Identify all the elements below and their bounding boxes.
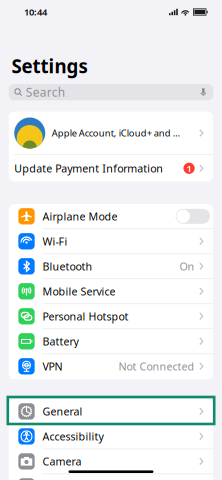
staticText: Battery — [42, 334, 78, 348]
button[interactable]: Mobile Service — [9, 279, 213, 304]
staticText: VPN — [42, 359, 62, 373]
button[interactable]: Personal Hotspot — [9, 304, 213, 329]
button[interactable]: Accessibility — [9, 424, 213, 449]
button[interactable]: Wi-Fi — [9, 229, 213, 254]
staticText: Apple Account, iCloud+ and more — [52, 127, 184, 139]
staticText: Mobile Service — [42, 284, 115, 298]
button[interactable]: VPN — [9, 354, 213, 379]
staticText: General — [42, 404, 82, 418]
staticText: 1 — [186, 162, 191, 174]
button[interactable]: Photos — [9, 474, 213, 480]
button[interactable]: Bluetooth — [9, 254, 213, 279]
staticText: Update Payment Information — [14, 161, 163, 175]
button[interactable]: General — [9, 399, 213, 424]
staticText: Search — [26, 84, 65, 100]
staticText: Wi-Fi — [42, 234, 67, 248]
button[interactable]: Apple Account, iCloud+ and more — [9, 111, 213, 155]
staticText: On — [179, 259, 194, 273]
staticText: Not Connected — [118, 359, 194, 373]
button[interactable]: Camera — [9, 449, 213, 474]
staticText: Bluetooth — [42, 259, 92, 273]
button[interactable]: Battery — [9, 329, 213, 354]
staticText: Accessibility — [42, 429, 103, 443]
button[interactable]: Airplane Mode — [9, 204, 213, 229]
staticText: Personal Hotspot — [42, 309, 128, 323]
button[interactable]: Update Payment Information — [9, 155, 213, 181]
staticText: Camera — [42, 454, 81, 468]
staticText: Airplane Mode — [42, 209, 117, 223]
staticText: 10:44 — [24, 6, 47, 18]
staticText: Settings — [11, 54, 87, 78]
